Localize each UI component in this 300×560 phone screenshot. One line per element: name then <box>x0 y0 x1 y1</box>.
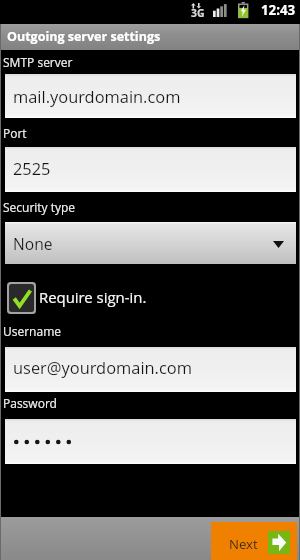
staticText: Outgoing server settings <box>7 28 161 45</box>
staticText: Password <box>3 395 57 411</box>
other: Signal strength <box>213 4 227 17</box>
staticText: None <box>13 233 53 254</box>
staticText: Security type <box>3 199 76 215</box>
button[interactable]: user@yourdomain.com <box>5 347 296 392</box>
staticText: Port <box>3 125 27 141</box>
button[interactable]: 2525 <box>5 147 296 192</box>
staticText: Require sign-in. <box>39 287 147 307</box>
button[interactable] <box>5 419 296 464</box>
other: Next <box>268 531 290 554</box>
button[interactable]: mail.yourdomain.com <box>5 74 296 118</box>
staticText: 2525 <box>13 157 51 179</box>
staticText: user@yourdomain.com <box>13 356 192 378</box>
button[interactable]: Next <box>211 522 297 560</box>
staticText: Next <box>229 535 258 553</box>
staticText: SMTP server <box>3 54 73 70</box>
staticText: 12:43 <box>261 1 296 19</box>
staticText: 3G <box>191 6 205 20</box>
button[interactable]: Require sign-in. <box>0 283 300 315</box>
button[interactable]: None <box>5 222 296 264</box>
staticText: Username <box>3 323 62 339</box>
other: 3G data <box>191 3 202 9</box>
other: Battery charging <box>238 2 249 19</box>
staticText: mail.yourdomain.com <box>13 85 181 107</box>
other: Open security type list <box>273 241 284 248</box>
